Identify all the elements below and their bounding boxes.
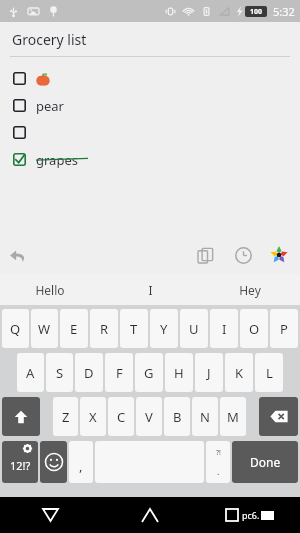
staticText: D xyxy=(84,364,94,382)
button[interactable]: , xyxy=(69,441,93,483)
staticText: . xyxy=(217,465,220,477)
button[interactable]: Hey xyxy=(200,274,300,305)
button[interactable]: Done xyxy=(232,441,298,483)
button[interactable]: Stickers xyxy=(262,238,296,272)
button[interactable]: U xyxy=(180,309,208,348)
button[interactable]: Recents xyxy=(200,497,300,533)
button[interactable]: Back xyxy=(0,497,100,533)
button[interactable]: Shift xyxy=(2,397,40,436)
button[interactable]: Copy xyxy=(188,238,222,272)
staticText: P xyxy=(280,320,288,338)
staticText: E xyxy=(70,320,78,338)
button[interactable]: X xyxy=(80,397,106,436)
staticText: Hello xyxy=(35,282,65,298)
staticText: grapes xyxy=(36,151,78,169)
staticText: 12!? xyxy=(10,458,31,473)
staticText: J xyxy=(207,364,211,382)
button[interactable]: J xyxy=(195,353,223,392)
staticText: G xyxy=(144,364,154,382)
staticText: M xyxy=(227,408,239,426)
staticText: S xyxy=(56,364,64,382)
staticText: I xyxy=(148,282,153,298)
staticText: Z xyxy=(62,408,70,426)
staticText: B xyxy=(173,408,182,426)
button[interactable]: ?! xyxy=(206,441,230,483)
staticText: Q xyxy=(10,320,21,338)
button[interactable]: H xyxy=(165,353,193,392)
button[interactable]: P xyxy=(270,309,298,348)
button[interactable]: D xyxy=(75,353,103,392)
button[interactable]: S xyxy=(46,353,73,392)
staticText: Hey xyxy=(239,282,261,298)
button[interactable]: K xyxy=(225,353,253,392)
other: Checkbox xyxy=(13,153,26,166)
button[interactable]: Checkbox xyxy=(0,146,300,173)
staticText: ?! xyxy=(216,448,221,458)
button[interactable]: Symbols xyxy=(2,441,38,483)
other: Checkbox xyxy=(13,126,26,139)
staticText: U xyxy=(189,320,199,338)
staticText: 100 xyxy=(250,7,263,17)
staticText: pear xyxy=(36,97,64,115)
button[interactable]: C xyxy=(108,397,134,436)
button[interactable]: Recent xyxy=(226,238,260,272)
button[interactable]: Emoji xyxy=(40,441,67,483)
button[interactable]: Z xyxy=(53,397,78,436)
staticText: pc6. xyxy=(242,509,260,521)
staticText: Done xyxy=(250,454,281,470)
button[interactable]: F xyxy=(105,353,133,392)
button[interactable]: R xyxy=(90,309,118,348)
staticText: N xyxy=(200,408,210,426)
staticText: X xyxy=(89,408,97,426)
staticText: I xyxy=(222,320,227,338)
button[interactable]: B xyxy=(164,397,190,436)
button[interactable]: Undo xyxy=(0,238,34,272)
staticText: , xyxy=(79,457,83,475)
button[interactable]: I xyxy=(210,309,238,348)
staticText: Y xyxy=(160,320,168,338)
button[interactable]: I xyxy=(100,274,200,305)
button[interactable]: Y xyxy=(150,309,178,348)
staticText: F xyxy=(116,364,123,382)
button[interactable]: Backspace xyxy=(259,397,298,436)
button[interactable]: Checkbox xyxy=(0,92,300,119)
staticText: Grocery list xyxy=(12,30,87,49)
button[interactable]: G xyxy=(135,353,163,392)
button[interactable]: Checkbox xyxy=(0,65,300,92)
button[interactable]: Home xyxy=(100,497,200,533)
staticText: O xyxy=(249,320,260,338)
staticText: V xyxy=(145,408,153,426)
staticText: H xyxy=(174,364,184,382)
other: Checkbox xyxy=(13,99,26,112)
button[interactable]: V xyxy=(136,397,162,436)
staticText: L xyxy=(266,364,273,382)
staticText: 5:32 xyxy=(273,4,295,19)
button[interactable]: Checkbox xyxy=(0,119,300,146)
button[interactable]: M xyxy=(220,397,246,436)
button[interactable]: N xyxy=(192,397,218,436)
staticText: W xyxy=(38,320,51,338)
button[interactable]: O xyxy=(240,309,268,348)
button[interactable]: Hello xyxy=(0,274,100,305)
button[interactable]: E xyxy=(60,309,88,348)
staticText: K xyxy=(235,364,244,382)
button[interactable]: A xyxy=(17,353,44,392)
button[interactable]: L xyxy=(255,353,283,392)
staticText: C xyxy=(117,408,126,426)
button[interactable]: T xyxy=(120,309,148,348)
button[interactable]: Q xyxy=(2,309,29,348)
staticText: R xyxy=(100,320,109,338)
staticText: T xyxy=(130,320,138,338)
other: Checkbox xyxy=(13,72,26,85)
button[interactable]: W xyxy=(31,309,58,348)
staticText: A xyxy=(26,364,35,382)
